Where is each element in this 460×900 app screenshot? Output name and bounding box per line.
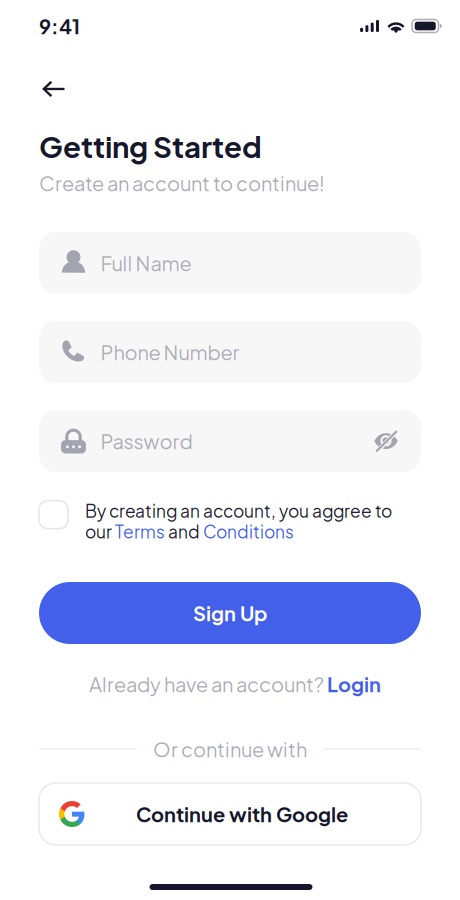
staticText: 9:41 xyxy=(39,13,80,39)
button[interactable]: By creating an account, you aggree to xyxy=(39,500,421,542)
staticText: Conditions xyxy=(203,520,294,542)
staticText: Or continue with xyxy=(153,736,307,762)
staticText: Terms xyxy=(115,520,165,542)
button[interactable]: Back xyxy=(31,69,75,109)
staticText: Login xyxy=(327,671,381,697)
staticText: Full Name xyxy=(100,250,191,276)
button[interactable]: Already have an account? xyxy=(89,671,381,697)
button[interactable]: Show password xyxy=(371,426,401,456)
staticText: Continue with Google xyxy=(136,801,348,827)
staticText: Already have an account? xyxy=(89,671,327,697)
button[interactable]: Continue with Google xyxy=(39,783,421,845)
staticText: Sign Up xyxy=(193,600,267,626)
staticText: and xyxy=(165,520,203,542)
staticText: Create an account to continue! xyxy=(39,170,325,196)
staticText: Password xyxy=(100,428,192,454)
button[interactable]: Sign Up xyxy=(39,582,421,644)
staticText: Getting Started xyxy=(39,127,262,164)
staticText: Phone Number xyxy=(100,339,239,365)
staticText: By creating an account, you aggree to xyxy=(85,500,392,521)
staticText: our xyxy=(85,520,115,542)
